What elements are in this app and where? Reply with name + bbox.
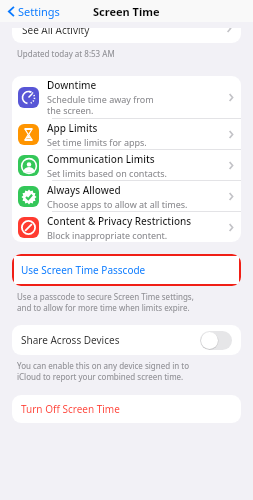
staticText: Share Across Devices [21,333,200,347]
staticText: Screen Time [93,4,160,19]
staticText: Turn Off Screen Time [21,402,120,416]
staticText: Updated today at 8:53 AM [17,48,115,59]
staticText: Choose apps to allow at all times. [47,198,188,210]
staticText: Use Screen Time Passcode [21,263,146,277]
staticText: See All Activity [22,28,90,37]
staticText: Always Allowed [47,183,121,197]
staticText: Set limits based on contacts. [47,167,167,179]
staticText: Use a passcode to secure Screen Time set… [17,291,194,313]
button[interactable]: App Limits [12,119,241,149]
staticText: You can enable this on any device signed… [17,360,190,382]
staticText: Block inappropriate content. [47,229,168,241]
button[interactable]: Always Allowed [12,181,241,211]
staticText: Content & Privacy Restrictions [47,214,192,228]
button[interactable]: See All Activity [12,28,241,43]
button[interactable]: Settings [6,2,62,21]
button[interactable]: Communication Limits [12,150,241,180]
staticText: Communication Limits [47,152,155,166]
button[interactable]: Use Screen Time Passcode [12,254,241,286]
staticText: Settings [18,4,60,19]
staticText: Schedule time away from the screen. [47,93,154,116]
button[interactable]: Share Across Devices [12,325,241,355]
staticText: App Limits [47,121,98,135]
staticText: Downtime [47,78,97,92]
button[interactable]: Turn Off Screen Time [12,395,241,423]
staticText: Set time limits for apps. [47,136,147,148]
button[interactable]: Content & Privacy Restrictions [12,212,241,242]
button[interactable]: Downtime [12,76,241,118]
button[interactable]: Share Across Devices toggle [200,331,232,350]
